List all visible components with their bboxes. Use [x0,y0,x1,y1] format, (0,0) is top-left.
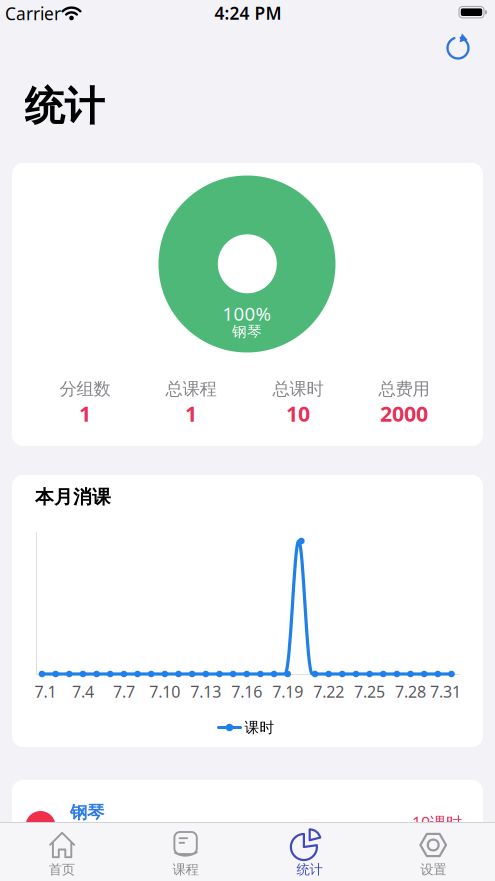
staticText: 7.28 [395,681,426,702]
staticText: 统计 [24,82,104,131]
staticText: 7.1 [34,681,56,702]
button[interactable]: 钢琴 [12,780,483,822]
staticText: 本月消课 [35,485,111,508]
staticText: 总费用 [378,378,429,400]
staticText: 总课程 [165,378,216,400]
staticText: 设置 [420,861,446,878]
staticText: 10课时 [412,812,462,833]
staticText: 7.16 [231,681,262,702]
staticText: 首页 [49,861,75,878]
button[interactable]: 统计 [248,823,371,881]
staticText: 1 [185,399,197,428]
staticText: 7.31 [430,681,461,702]
staticText: 7.19 [272,681,303,702]
staticText: 7.13 [190,681,221,702]
staticText: 分组数 [59,378,110,400]
staticText: 7.7 [113,681,135,702]
button[interactable]: 设置 [372,823,495,881]
staticText: 统计 [296,861,322,878]
button[interactable]: Refresh [440,30,476,66]
staticText: 1 [79,399,91,428]
staticText: 课程 [173,861,199,878]
staticText: 7.4 [72,681,94,702]
button[interactable]: 课程 [124,823,247,881]
staticText: 100% [222,301,271,326]
staticText: 钢琴 [232,322,262,340]
staticText: 钢琴 [70,802,104,823]
staticText: 7.10 [149,681,180,702]
staticText: 课时 [244,718,274,736]
staticText: 4:24 PM [214,1,281,24]
staticText: 10 [286,399,310,428]
staticText: 总课时 [272,378,323,400]
staticText: 7.25 [354,681,385,702]
staticText: 2000 [380,399,428,428]
button[interactable]: 首页 [0,823,123,881]
staticText: Carrier [5,2,61,25]
staticText: 7.22 [313,681,344,702]
